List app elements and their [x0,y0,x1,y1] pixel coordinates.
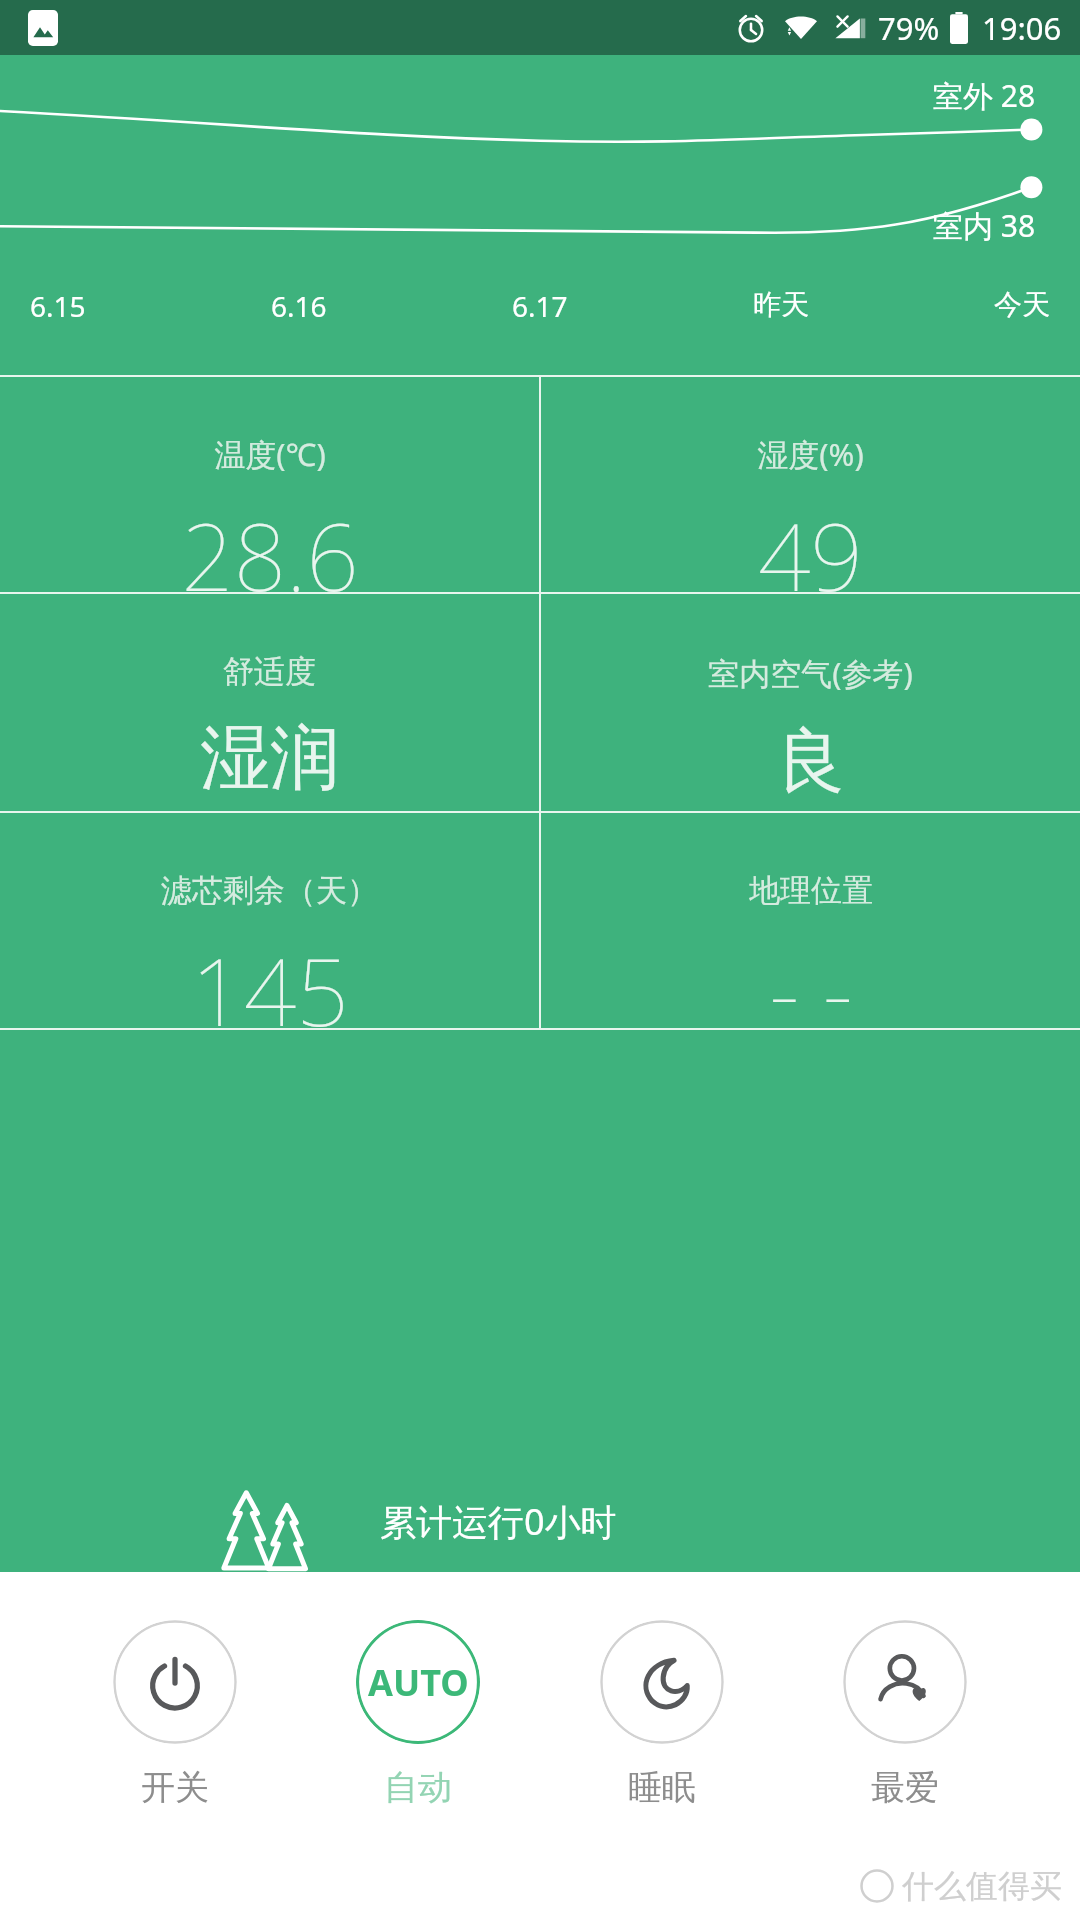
button[interactable]: 滤芯剩余（天） [0,813,539,1030]
staticText: 6.17 [512,287,568,325]
other: 开关 [144,1651,206,1713]
staticText: 49 [758,493,863,592]
button[interactable]: 累计运行0小时 [0,1030,1080,1572]
button[interactable]: 开关 [107,1620,243,1809]
staticText: 累计运行0小时 [380,1497,617,1546]
staticText: 最爱 [871,1766,939,1809]
staticText: 室内 38 [933,205,1036,246]
button[interactable]: 室内空气(参考) [541,594,1080,811]
staticText: 6.15 [30,287,86,325]
staticText: 28.6 [181,493,359,592]
staticText: 什么值得买 [902,1866,1062,1906]
button[interactable]: 舒适度 [0,594,539,811]
staticText: AUTO [368,1658,469,1707]
staticText: 19:06 [982,7,1062,49]
staticText: 温度(℃) [214,433,326,475]
staticText: 良 [776,718,846,806]
staticText: 今天 [994,287,1050,322]
staticText: - - [769,928,853,1030]
button[interactable]: 湿度(%) [541,375,1080,592]
staticText: 舒适度 [223,652,316,691]
staticText: 昨天 [753,287,809,322]
other: 最爱 [874,1651,936,1713]
button[interactable]: 自动 [350,1620,486,1809]
button[interactable]: 睡眠 [594,1620,730,1809]
button[interactable]: 最爱 [837,1620,973,1809]
staticText: 地理位置 [749,871,873,910]
staticText: 6.16 [271,287,327,325]
button[interactable]: 温度(℃) [0,375,539,592]
staticText: 睡眠 [628,1766,696,1809]
other: 睡眠 [632,1652,692,1712]
staticText: 滤芯剩余（天） [161,871,378,910]
staticText: 开关 [141,1766,209,1809]
staticText: 145 [191,928,349,1030]
staticText: 自动 [384,1766,452,1809]
button[interactable]: 地理位置 [541,813,1080,1030]
other: 自动 [368,1658,469,1707]
staticText: 湿润 [200,715,340,803]
staticText: 室内空气(参考) [708,652,913,694]
staticText: 79% [878,7,940,49]
staticText: 湿度(%) [757,433,864,475]
staticText: 室外 28 [933,75,1036,116]
